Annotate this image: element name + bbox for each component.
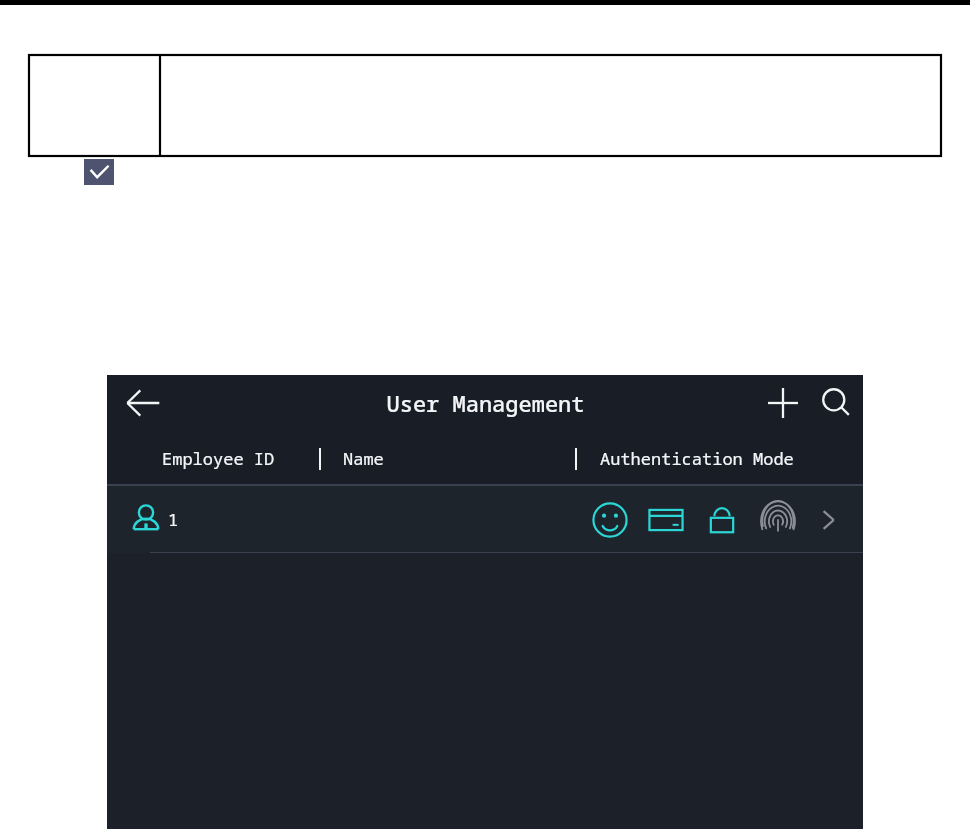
button[interactable]: Add user (759, 379, 807, 427)
button[interactable]: Fingerprint authentication (756, 498, 800, 542)
staticText: User Management (386, 388, 585, 418)
button[interactable]: Face authentication (588, 498, 632, 542)
staticText: Employee ID (162, 447, 275, 470)
button[interactable]: 1 (107, 486, 863, 553)
staticText: Authentication Mode (600, 447, 794, 470)
staticText: Name (343, 447, 384, 470)
staticText: 1 (168, 508, 179, 531)
button[interactable]: Open user details (806, 498, 850, 542)
button[interactable]: Card authentication (644, 498, 688, 542)
button[interactable]: Back (117, 377, 169, 429)
button[interactable]: Checked (84, 159, 114, 185)
button[interactable]: Password authentication (700, 498, 744, 542)
button[interactable]: Search (812, 379, 860, 427)
